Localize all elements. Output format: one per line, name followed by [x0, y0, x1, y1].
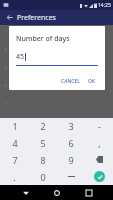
button[interactable]: 8 [29, 151, 57, 168]
staticText: 6 [68, 137, 74, 149]
button[interactable]: 1 [0, 118, 29, 134]
button[interactable]: Recent apps [82, 186, 95, 199]
button[interactable]: 9 [57, 151, 85, 168]
button[interactable]: Back [19, 186, 32, 199]
button[interactable]: Back [4, 12, 15, 23]
button[interactable]: - [85, 118, 113, 134]
button[interactable]: Home [50, 186, 63, 199]
staticText: 2 [40, 120, 46, 132]
button[interactable]: 0 [29, 168, 57, 185]
staticText: , [98, 137, 101, 149]
button[interactable] [57, 168, 85, 185]
button[interactable]: 4 [0, 134, 29, 151]
staticText: Number of days [16, 34, 70, 44]
staticText: 0 [40, 171, 46, 183]
staticText: Preferences [17, 13, 56, 23]
staticText: 14:25 [98, 2, 111, 9]
staticText: 4 [12, 137, 18, 149]
button[interactable]: , [85, 134, 113, 151]
staticText: 5 [40, 137, 46, 149]
button[interactable]: Delete [85, 151, 113, 168]
staticText: 7 [12, 154, 18, 166]
button[interactable]: 5 [29, 134, 57, 151]
staticText: 9 [68, 154, 74, 166]
staticText: 8 [40, 154, 46, 166]
staticText: - [98, 120, 101, 132]
button[interactable]: . [0, 168, 29, 185]
staticText: . [13, 171, 16, 183]
staticText: 45 [16, 52, 25, 62]
button[interactable]: 7 [0, 151, 29, 168]
staticText: 1 [12, 120, 18, 132]
button[interactable]: 3 [57, 118, 85, 134]
button[interactable]: Enter [85, 168, 113, 185]
button[interactable]: OK [86, 77, 98, 86]
button[interactable]: CANCEL [59, 77, 82, 86]
staticText: CANCEL [61, 78, 80, 85]
button[interactable]: 6 [57, 134, 85, 151]
staticText: OK [88, 78, 96, 85]
staticText: 3 [68, 120, 74, 132]
button[interactable]: 2 [29, 118, 57, 134]
